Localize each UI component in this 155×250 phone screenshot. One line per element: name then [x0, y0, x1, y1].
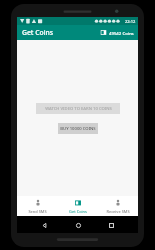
staticText: BUY 10000 COINS: [60, 126, 96, 132]
button[interactable]: Coin balance 49542 coins: [100, 29, 134, 36]
button[interactable]: WATCH VIDEO TO EARN 10 COINS: [36, 103, 120, 114]
staticText: Receive SMS: [106, 209, 130, 214]
staticText: Send SMS: [28, 209, 47, 214]
staticText: WATCH VIDEO TO EARN 10 COINS: [45, 106, 112, 112]
button[interactable]: Back: [37, 218, 51, 232]
button[interactable]: Recents: [104, 218, 118, 232]
button[interactable]: Home: [71, 218, 85, 232]
button[interactable]: Get Coins: [58, 196, 98, 216]
button[interactable]: BUY 10000 COINS: [58, 123, 98, 134]
staticText: 49542 Coins: [109, 30, 134, 36]
button[interactable]: Send SMS: [17, 196, 58, 216]
staticText: Get Coins: [69, 209, 87, 214]
staticText: 22:12: [125, 19, 136, 24]
staticText: Get Coins: [22, 28, 54, 37]
button[interactable]: Receive SMS: [98, 196, 138, 216]
